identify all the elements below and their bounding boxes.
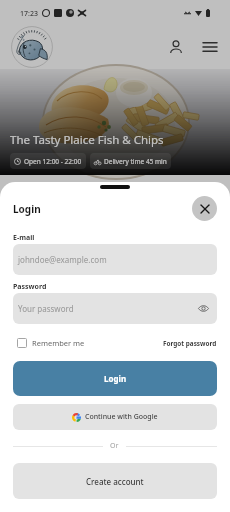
- staticText: Or: [110, 441, 119, 451]
- staticText: The Tasty Plaice Fish & Chips: [10, 132, 164, 148]
- staticText: E-mail: [13, 233, 35, 243]
- staticText: Remember me: [32, 338, 85, 348]
- button[interactable]: Account: [165, 36, 187, 58]
- staticText: Password: [13, 282, 47, 292]
- button[interactable]: Menu: [199, 36, 221, 58]
- button[interactable]: Continue with Google: [13, 404, 217, 430]
- staticText: Login: [104, 373, 127, 384]
- button[interactable]: Create account: [13, 463, 217, 499]
- button[interactable]: Forgot password: [163, 339, 217, 348]
- staticText: Create account: [86, 476, 144, 487]
- staticText: Open 12:00 - 22:00: [24, 157, 82, 166]
- staticText: 17:23: [20, 9, 38, 19]
- button[interactable]: Close: [192, 196, 217, 221]
- button[interactable]: Remember me: [17, 338, 85, 348]
- staticText: Your password: [18, 303, 74, 314]
- staticText: Delivery time 45 min: [104, 157, 167, 166]
- other: Show password: [198, 303, 209, 314]
- staticText: Login: [13, 202, 41, 216]
- button[interactable]: Login: [13, 361, 217, 396]
- button[interactable]: johndoe@example.com: [13, 244, 217, 275]
- staticText: johndoe@example.com: [18, 254, 107, 265]
- staticText: Continue with Google: [85, 412, 158, 422]
- button[interactable]: Your password: [13, 293, 217, 324]
